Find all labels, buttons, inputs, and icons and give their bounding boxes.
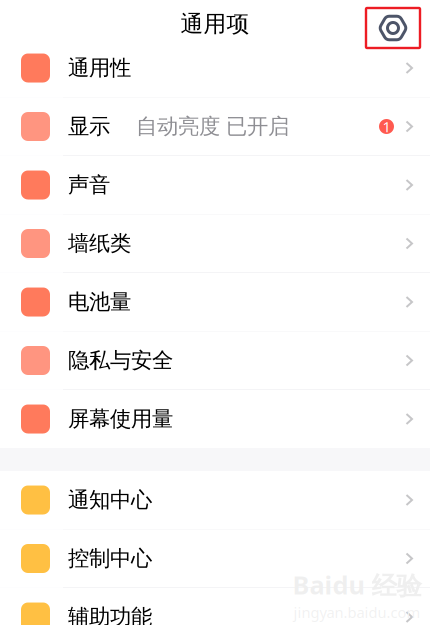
staticText: 通用项 [180, 10, 249, 38]
button[interactable]: 隐私与安全 [0, 331, 430, 389]
staticText: 控制中心 [68, 545, 152, 572]
staticText: 通知中心 [68, 487, 152, 513]
staticText: 辅助功能 [68, 604, 152, 625]
button[interactable]: 电池量 [0, 273, 430, 331]
button[interactable]: 声音 [0, 156, 430, 214]
button[interactable]: Settings [366, 8, 420, 48]
button[interactable]: 辅助功能 [0, 588, 430, 625]
button[interactable]: 通知中心 [0, 471, 430, 529]
button[interactable]: 屏幕使用量 [0, 390, 430, 448]
staticText: 墙纸类 [68, 230, 131, 257]
staticText: 自动亮度 已开启 [136, 113, 289, 140]
button[interactable]: 墙纸类 [0, 214, 430, 272]
button[interactable]: 控制中心 [0, 529, 430, 587]
staticText: Baidu 经验 [292, 568, 421, 602]
staticText: 显示 [68, 113, 110, 140]
staticText: jingyan.baidu.com [293, 603, 420, 622]
staticText: 隐私与安全 [68, 347, 173, 374]
button[interactable]: 通用性 [0, 39, 430, 97]
button[interactable]: 显示 [0, 97, 430, 155]
staticText: 声音 [68, 172, 110, 198]
staticText: 1 [382, 117, 390, 136]
staticText: 电池量 [68, 289, 131, 315]
staticText: 屏幕使用量 [68, 406, 173, 432]
staticText: 通用性 [68, 55, 131, 81]
